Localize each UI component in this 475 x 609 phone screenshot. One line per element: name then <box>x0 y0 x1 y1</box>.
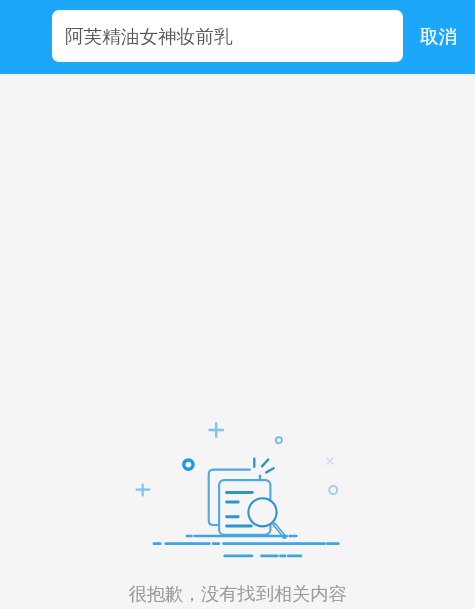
button[interactable]: 取消 <box>403 0 475 74</box>
button[interactable]: 阿芙精油女神妆前乳 <box>52 10 403 62</box>
staticText: 阿芙精油女神妆前乳 <box>65 25 233 48</box>
other: No search results illustration <box>0 74 475 609</box>
staticText: 很抱歉，没有找到相关内容 <box>0 582 475 605</box>
staticText: 取消 <box>420 25 458 48</box>
